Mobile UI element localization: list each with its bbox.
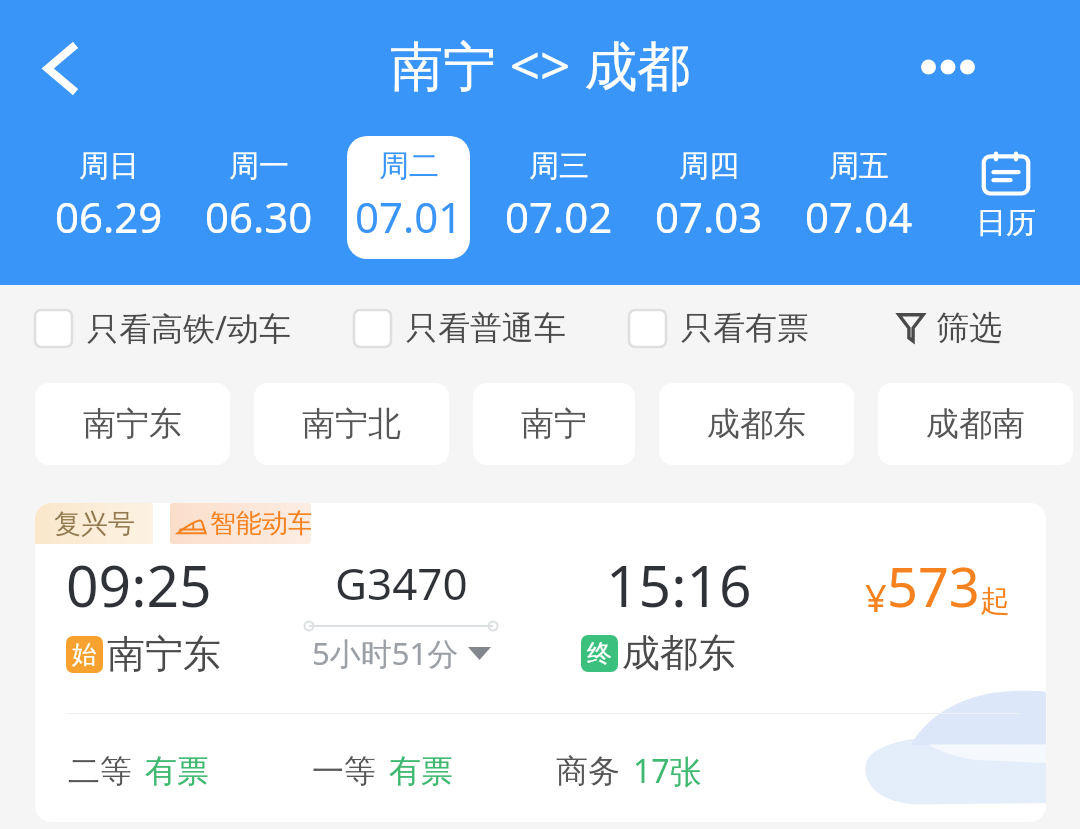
button[interactable]: Calendar [933,131,1080,285]
staticText: 07.03 [655,188,763,245]
button[interactable]: 周日 [47,136,170,259]
button[interactable]: 只看有票 [629,308,809,348]
staticText: 商务 [556,751,620,791]
staticText: 有票 [145,751,209,791]
staticText: 周一 [229,147,289,185]
button[interactable]: 南宁 [473,383,635,465]
staticText: 南宁北 [302,403,401,445]
staticText: 成都东 [707,403,806,445]
staticText: 二等 [68,751,132,791]
button[interactable]: 筛选 [878,307,1080,349]
staticText: 起 [980,582,1010,620]
staticText: 成都东 [622,629,736,677]
staticText: 南宁 [521,403,587,445]
staticText: 只看普通车 [406,308,566,348]
staticText: 筛选 [936,307,1002,349]
staticText: 南宁东 [83,403,182,445]
button[interactable]: Back [4,11,114,121]
staticText: 南宁东 [107,630,221,678]
button[interactable]: 周一 [197,136,320,259]
staticText: 成都南 [926,403,1025,445]
staticText: 复兴号 [54,507,135,541]
staticText: 15:16 [606,546,752,624]
button[interactable]: 周二 [347,136,470,259]
staticText: 南宁 <> 成都 [390,28,691,100]
staticText: 周五 [829,147,889,185]
staticText: 07.04 [805,188,913,245]
button[interactable]: 成都东 [659,383,854,465]
staticText: 只看高铁/动车 [87,306,291,350]
button[interactable]: 复兴号 [35,503,1046,822]
button[interactable]: 只看高铁/动车 [35,306,291,350]
staticText: 06.30 [205,188,313,245]
button[interactable]: 成都南 [878,383,1073,465]
button[interactable]: 周三 [497,136,620,259]
staticText: 周四 [679,147,739,185]
staticText: 始 [72,639,97,670]
staticText: 日历 [976,204,1036,242]
staticText: 周二 [379,147,439,185]
staticText: 5小时51分 [312,632,459,674]
staticText: 06.29 [55,188,163,245]
staticText: 周日 [79,147,139,185]
staticText: 573 [887,549,980,623]
staticText: 一等 [312,751,376,791]
staticText: 终 [587,638,612,669]
button[interactable]: 周四 [647,136,770,259]
staticText: 07.02 [505,188,613,245]
button[interactable]: 周五 [797,136,920,259]
staticText: 有票 [389,751,453,791]
staticText: G3470 [335,553,468,613]
staticText: 17张 [633,749,702,793]
button[interactable]: 南宁北 [254,383,449,465]
button[interactable]: 只看普通车 [354,308,566,348]
button[interactable]: 一等 [312,751,453,791]
button[interactable]: 商务 [556,749,702,793]
staticText: 周三 [529,147,589,185]
button[interactable]: 南宁东 [35,383,230,465]
button[interactable]: 二等 [68,751,209,791]
staticText: 07.01 [355,188,463,245]
staticText: ¥ [865,571,887,623]
staticText: 只看有票 [681,308,809,348]
button[interactable]: More options [893,11,1003,121]
staticText: 智能动车 [210,507,311,540]
staticText: 09:25 [66,546,212,624]
